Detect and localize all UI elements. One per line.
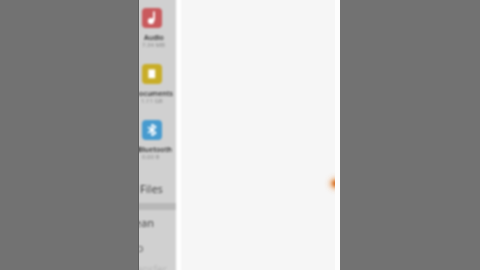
- staticText: 0.00 B: [142, 153, 160, 161]
- button[interactable]: Bluetooth: [142, 120, 162, 140]
- staticText: 7.34 MB: [142, 41, 165, 49]
- button[interactable]: Add: [323, 171, 340, 196]
- staticText: Bluetooth: [139, 145, 172, 155]
- staticText: Files: [140, 181, 163, 196]
- staticText: App: [139, 240, 144, 255]
- staticText: 1.11 GB: [141, 97, 163, 105]
- button[interactable]: Documents: [142, 64, 162, 84]
- staticText: Clean: [139, 215, 154, 230]
- staticText: Documents: [139, 89, 173, 99]
- staticText: Transfer: [139, 262, 167, 270]
- button[interactable]: Audio: [142, 8, 162, 28]
- staticText: Audio: [144, 33, 164, 43]
